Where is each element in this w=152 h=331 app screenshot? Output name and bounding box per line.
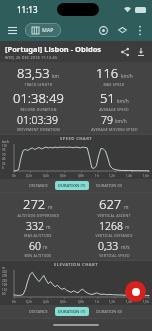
staticText: MAP: [42, 27, 54, 34]
staticText: ELEVATION CHART: [54, 262, 98, 268]
staticText: 11:13: [17, 4, 38, 15]
staticText: 79: [101, 113, 113, 127]
staticText: MIN ALTITUDE: [24, 253, 52, 258]
staticText: DISTANCE: [29, 309, 48, 314]
staticText: 01:38:49: [13, 89, 64, 107]
staticText: km/h: [121, 73, 133, 80]
staticText: 272: [23, 195, 46, 213]
staticText: 116: [96, 64, 119, 82]
staticText: 70: [2, 153, 6, 157]
staticText: DURATION (0): [96, 309, 123, 314]
staticText: 0,8 h: [78, 174, 85, 178]
staticText: AVERAGE MOVING SPEED: [91, 127, 138, 132]
staticText: m: [125, 224, 130, 231]
staticText: WED, 26 DEC 2018 11:13:45: [5, 55, 58, 60]
staticText: 51: [100, 89, 115, 107]
staticText: MAX SPEED: [103, 82, 125, 87]
staticText: 0,8 h: [78, 300, 85, 304]
staticText: 0,2 h: [26, 174, 33, 178]
staticText: 1,4 h: [126, 300, 133, 304]
staticText: VERTICAL SPEED: [99, 253, 130, 258]
staticText: 0,4 h: [43, 300, 50, 304]
button[interactable]: My location: [97, 24, 110, 37]
staticText: km/h: [115, 118, 127, 125]
staticText: DURATION (1): [58, 183, 86, 188]
staticText: 1,4 h: [126, 174, 133, 178]
staticText: m: [43, 244, 48, 251]
button[interactable]: DISTANCE: [26, 181, 51, 190]
button[interactable]: DURATION (1): [55, 181, 89, 190]
staticText: MAX ALTITUDE: [24, 233, 52, 238]
staticText: VERTICAL ASCENT: [97, 213, 131, 218]
staticText: 0,4 h: [43, 174, 50, 178]
staticText: TRACK LENGTH: [24, 82, 53, 87]
staticText: 83,53: [17, 64, 50, 82]
staticText: 60: [2, 292, 6, 296]
staticText: 114: [2, 288, 7, 292]
staticText: km/h: [117, 98, 129, 105]
staticText: 1,2 h: [109, 300, 116, 304]
staticText: 0 h: [12, 300, 16, 304]
staticText: 0,33: [98, 239, 119, 253]
staticText: 23: [2, 162, 6, 166]
button[interactable]: More options: [133, 23, 147, 37]
staticText: 1,2 h: [109, 174, 116, 178]
staticText: 0,2 h: [26, 300, 33, 304]
staticText: 0,6 h: [60, 174, 67, 178]
staticText: 93: [2, 148, 6, 152]
button[interactable]: Export: [133, 44, 149, 60]
staticText: 1,6 h: [143, 300, 150, 304]
staticText: 1,6 h: [143, 174, 150, 178]
button[interactable]: DURATION (1): [55, 307, 89, 316]
staticText: 0 h: [12, 174, 16, 178]
staticText: 1268: [99, 219, 123, 233]
button[interactable]: DISTANCE: [26, 307, 51, 316]
staticText: SPEED CHART: [60, 136, 93, 142]
staticText: m: [2, 266, 5, 270]
staticText: 116: [2, 144, 7, 148]
staticText: km: [52, 73, 60, 80]
staticText: 1 h: [95, 174, 99, 178]
staticText: [Portugal] Lisbon - Obidos: [5, 44, 102, 54]
staticText: 0,6 h: [60, 300, 67, 304]
button[interactable]: Menu: [5, 23, 20, 38]
staticText: 46: [2, 157, 6, 161]
staticText: 627: [99, 195, 122, 213]
staticText: 332: [2, 270, 7, 274]
staticText: 0: [2, 166, 4, 170]
staticText: 01:03:39: [17, 113, 59, 127]
staticText: 332: [26, 219, 44, 233]
staticText: 60: [29, 239, 41, 253]
button[interactable]: MAP: [25, 23, 61, 37]
button[interactable]: Map layers: [116, 24, 129, 37]
staticText: DURATION (1): [58, 309, 86, 314]
staticText: m/s: [121, 244, 130, 251]
button[interactable]: DURATION (0): [93, 307, 126, 316]
button[interactable]: Record track: [125, 281, 146, 302]
staticText: MOVEMENT DURATION: [17, 127, 60, 132]
staticText: m: [46, 224, 51, 231]
button[interactable]: Share: [117, 44, 133, 60]
staticText: DISTANCE: [29, 183, 48, 188]
staticText: AVERAGE SPEED: [99, 107, 129, 112]
staticText: ALTITUDE DIFFERENCE: [17, 213, 60, 218]
staticText: 1 h: [95, 300, 99, 304]
staticText: 223: [2, 279, 7, 283]
staticText: m: [124, 204, 129, 211]
staticText: km/h: [2, 140, 10, 144]
button[interactable]: DURATION (0): [93, 181, 126, 190]
staticText: 278: [2, 274, 7, 278]
staticText: 169: [2, 283, 7, 287]
staticText: m: [48, 204, 53, 211]
staticText: VERTICAL DISTANCE: [95, 233, 133, 238]
staticText: DURATION (0): [96, 183, 123, 188]
staticText: RECORD DURATION: [20, 107, 57, 112]
